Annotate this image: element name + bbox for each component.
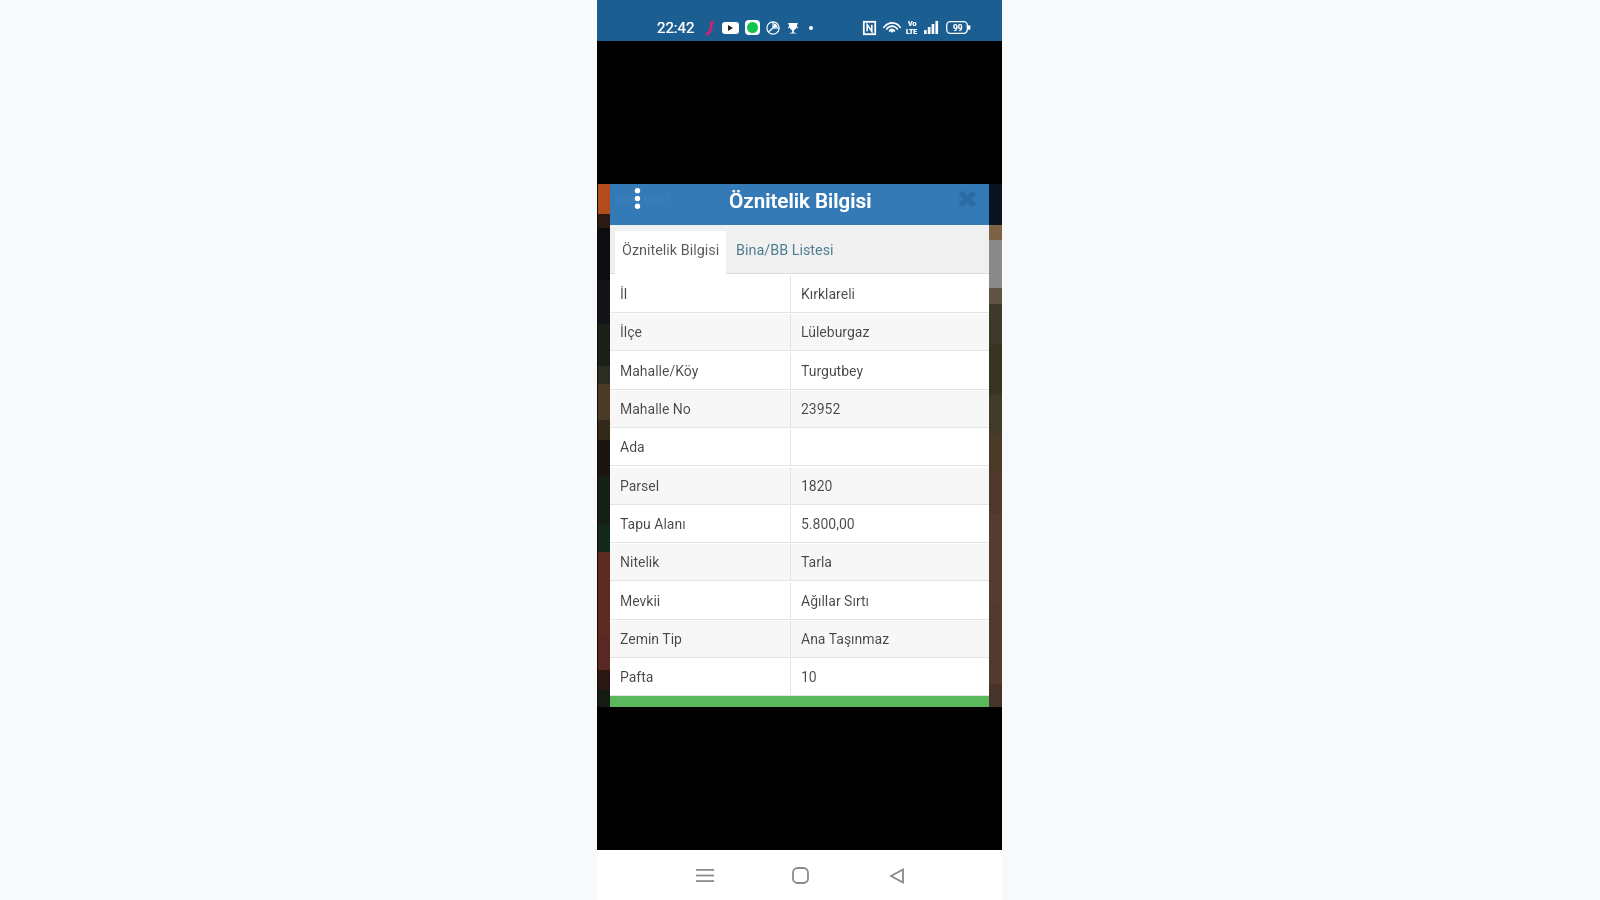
staticText: Öznitelik Bilgisi — [622, 242, 720, 259]
staticText: Vo — [908, 20, 917, 28]
staticText: Bina/BB Listesi — [736, 242, 834, 259]
staticText: Zemin Tip — [620, 631, 682, 647]
staticText: Nitelik — [620, 554, 660, 570]
button[interactable]: İl — [610, 276, 989, 313]
button[interactable]: Öznitelik Bilgisi — [615, 231, 726, 274]
button[interactable]: Pafta — [610, 659, 989, 696]
staticText: 99 — [953, 23, 963, 33]
staticText: LTE — [906, 28, 918, 36]
staticText: Mahalle No — [620, 401, 691, 417]
staticText: Kırklareli — [801, 286, 855, 302]
staticText: İl — [620, 286, 628, 302]
staticText: KIRKLARELİ — [615, 195, 670, 207]
staticText: Ağıllar Sırtı — [801, 593, 870, 609]
staticText: Mahalle/Köy — [620, 363, 699, 379]
staticText: Lüleburgaz — [801, 324, 870, 340]
staticText: 22:42 — [657, 19, 695, 37]
staticText: Tarla — [801, 554, 832, 570]
button[interactable]: Bina/BB Listesi — [726, 231, 844, 274]
button[interactable]: Zemin Tip — [610, 621, 989, 658]
button[interactable]: Menü — [624, 184, 650, 212]
button[interactable]: Geri — [873, 852, 920, 899]
staticText: Tapu Alanı — [620, 516, 686, 532]
staticText: 5.800,00 — [801, 516, 855, 532]
staticText: 23952 — [801, 401, 841, 417]
button[interactable]: İlçe — [610, 314, 989, 351]
button[interactable]: Mahalle No — [610, 391, 989, 428]
staticText: Parsel — [620, 478, 660, 494]
button[interactable]: Kapat — [953, 185, 981, 213]
staticText: 1820 — [801, 478, 833, 494]
button[interactable]: Mevkii — [610, 583, 989, 620]
button[interactable]: Son kullanılanlar — [681, 852, 728, 899]
button[interactable]: Nitelik — [610, 544, 989, 581]
staticText: İlçe — [620, 324, 642, 340]
staticText: Ada — [620, 439, 645, 455]
staticText: Öznitelik Bilgisi — [729, 189, 872, 213]
staticText: Turgutbey — [801, 363, 864, 379]
staticText: Pafta — [620, 669, 654, 685]
button[interactable]: Mahalle/Köy — [610, 353, 989, 390]
button[interactable]: Ada — [610, 429, 989, 466]
button[interactable]: Parsel — [610, 468, 989, 505]
button[interactable]: Tapu Alanı — [610, 506, 989, 543]
staticText: Ana Taşınmaz — [801, 631, 890, 647]
staticText: Mevkii — [620, 593, 661, 609]
staticText: 10 — [801, 669, 817, 685]
button[interactable]: Ana ekran — [777, 852, 824, 899]
